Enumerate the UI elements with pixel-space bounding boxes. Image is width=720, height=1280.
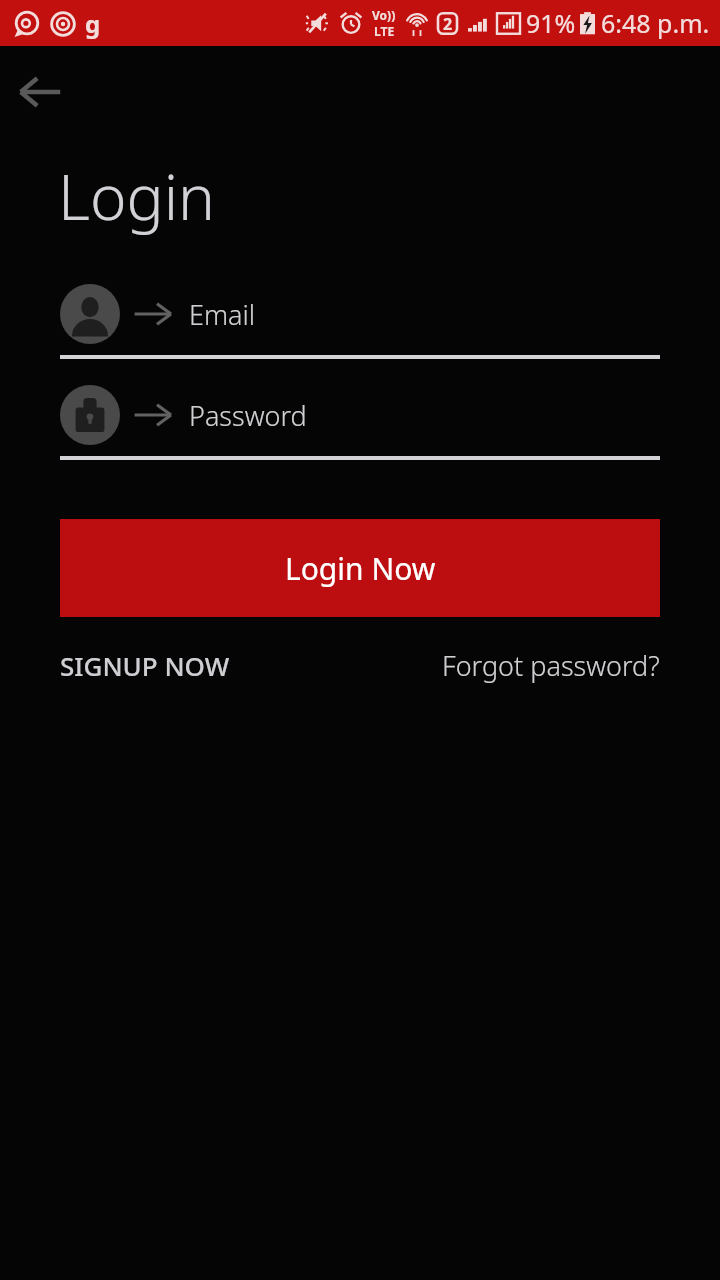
button[interactable]: Password (60, 385, 660, 460)
staticText: Login (58, 154, 215, 238)
button[interactable]: Back (8, 60, 72, 124)
staticText: g (85, 7, 101, 40)
button[interactable]: Forgot password? (442, 647, 660, 684)
staticText: Email (189, 296, 256, 333)
staticText: 91% (526, 6, 576, 40)
staticText: Forgot password? (442, 647, 660, 684)
staticText: 6:48 p.m. (601, 6, 710, 40)
button[interactable]: Email (60, 284, 660, 359)
staticText: Login Now (285, 548, 436, 589)
staticText: SIGNUP NOW (60, 648, 230, 683)
staticText: LTE (374, 23, 395, 39)
button[interactable]: SIGNUP NOW (60, 648, 230, 683)
staticText: 2 (443, 13, 453, 35)
staticText: Vo)) (372, 7, 396, 23)
button[interactable]: Login Now (60, 519, 660, 617)
staticText: Password (189, 397, 307, 434)
